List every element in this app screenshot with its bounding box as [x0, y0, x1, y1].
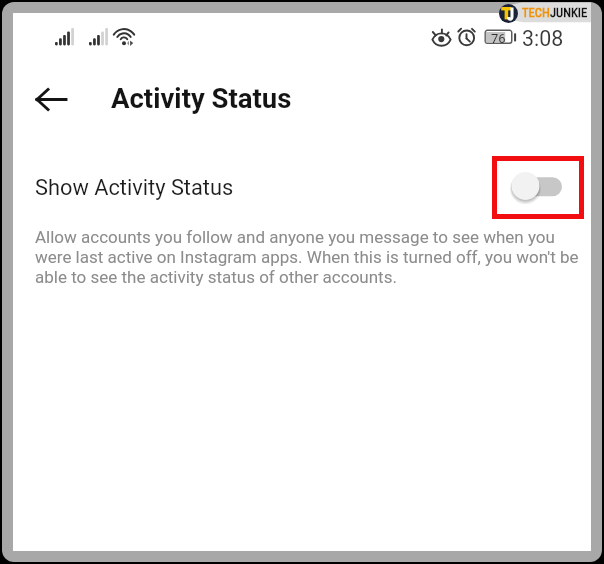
- staticText: JUNKIE: [550, 5, 588, 20]
- button[interactable]: Back: [24, 78, 78, 120]
- staticText: Allow accounts you follow and anyone you…: [35, 227, 591, 287]
- button[interactable]: Show Activity Status toggle: [492, 156, 584, 219]
- staticText: 76: [491, 31, 506, 46]
- staticText: TECH: [522, 5, 550, 20]
- staticText: Show Activity Status: [35, 175, 234, 201]
- button[interactable]: Show Activity Status: [13, 156, 591, 219]
- staticText: Activity Status: [111, 82, 292, 114]
- staticText: 3:08: [522, 26, 564, 51]
